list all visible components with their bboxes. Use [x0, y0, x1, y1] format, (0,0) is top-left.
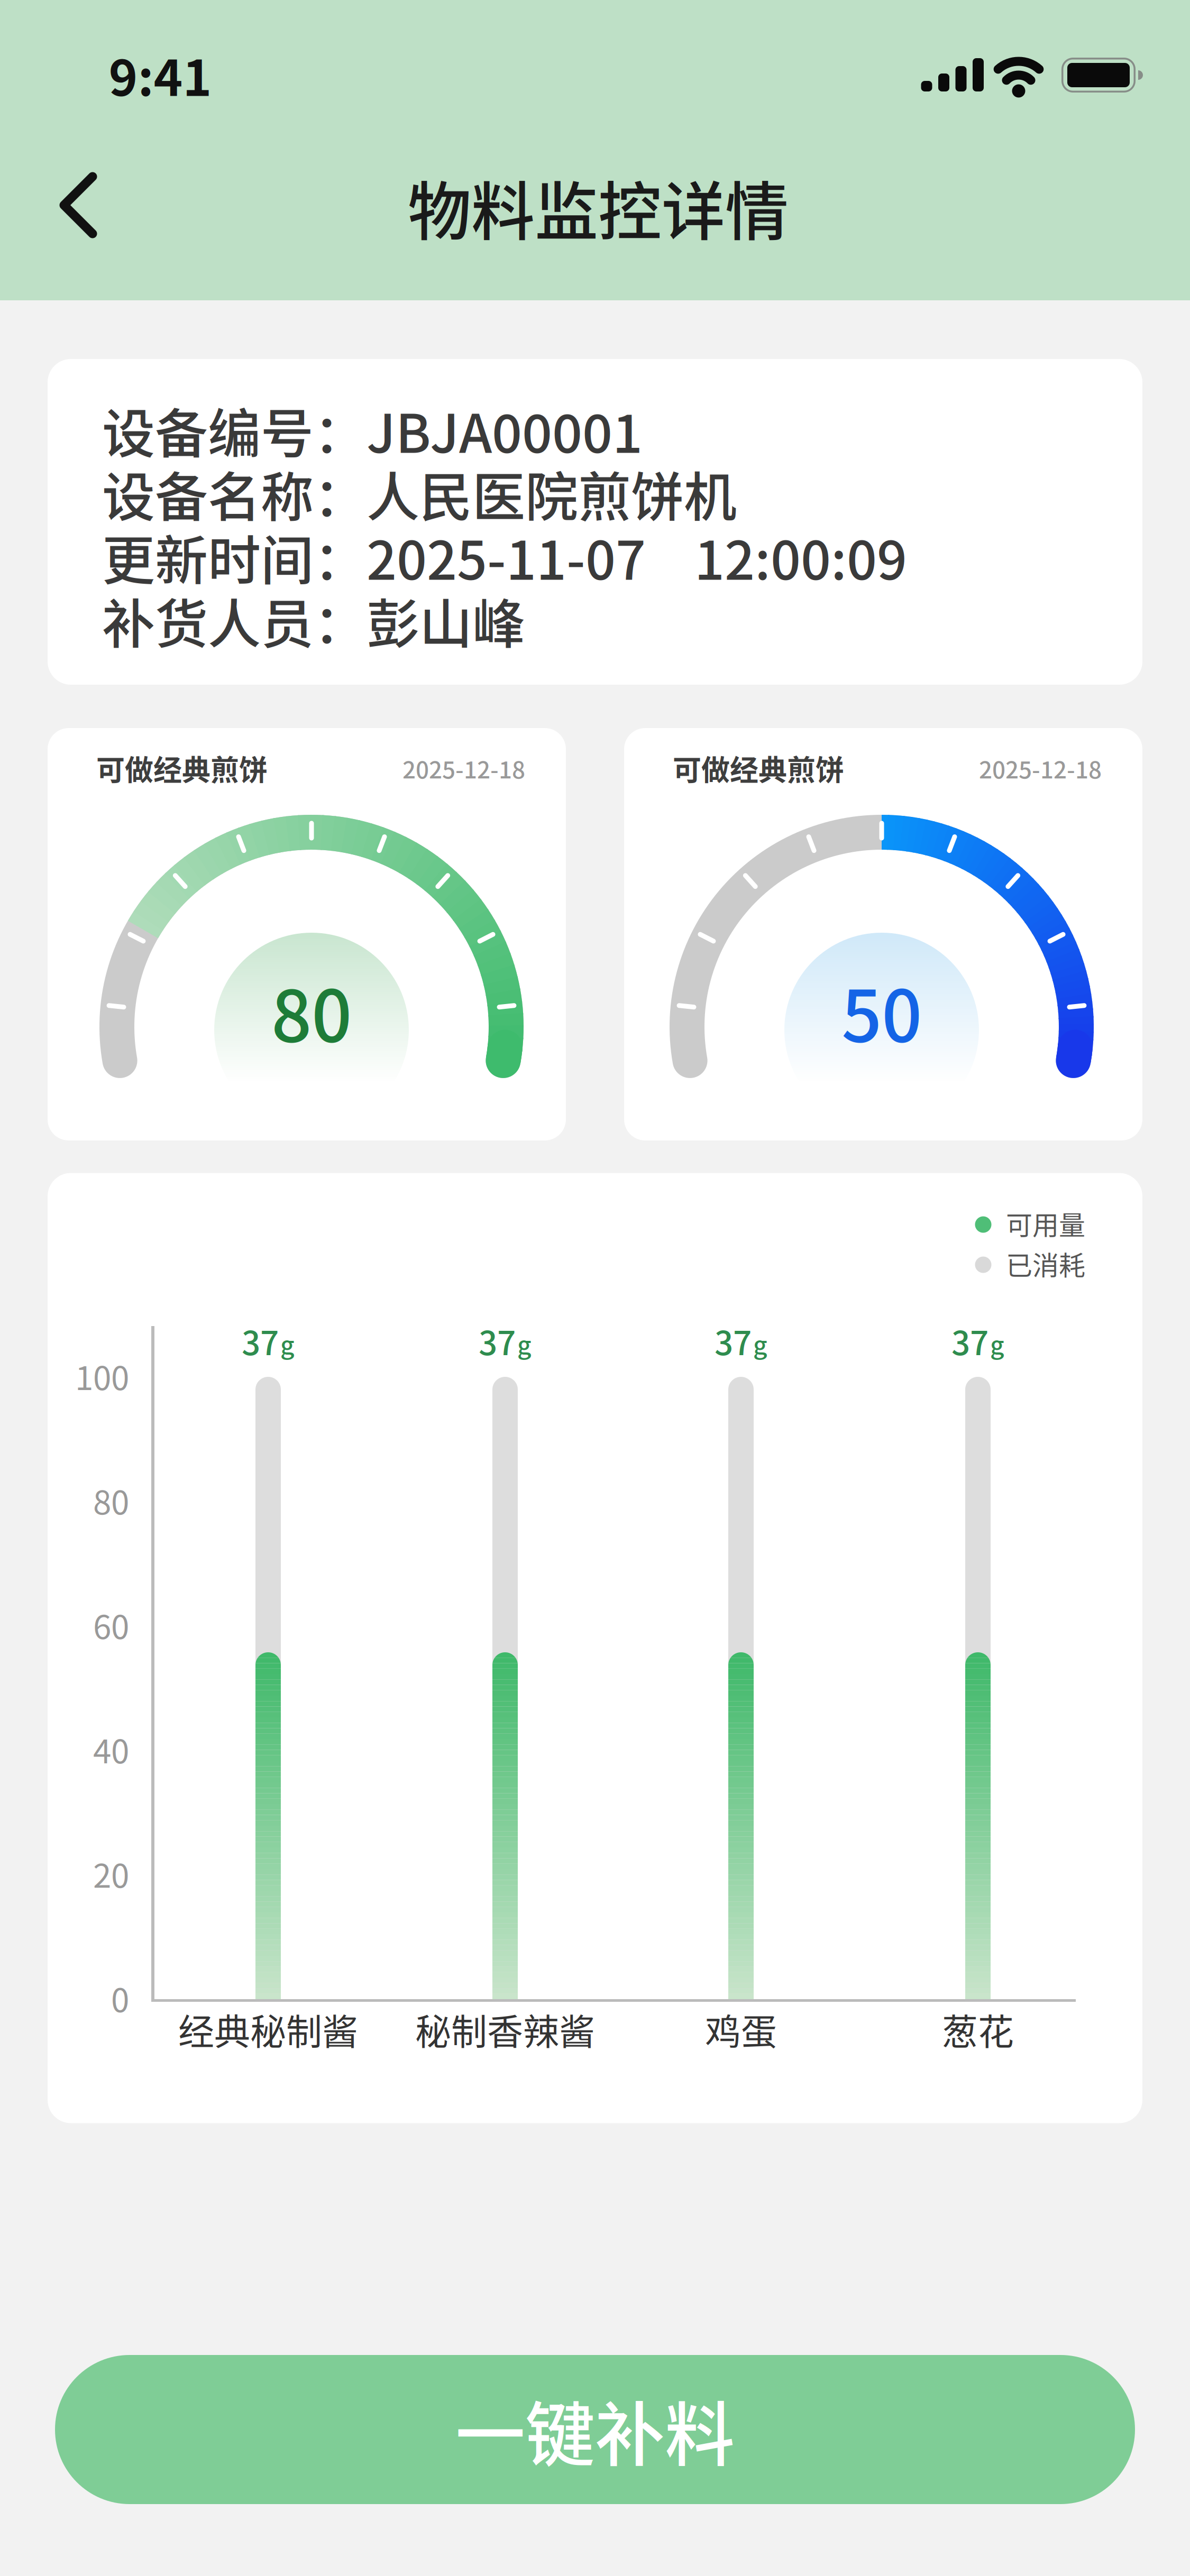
staticText: 9:41: [109, 39, 212, 110]
staticText: 50: [841, 960, 922, 1062]
staticText: 37: [242, 1317, 279, 1365]
staticText: 80: [93, 1476, 129, 1524]
staticText: 葱花: [942, 2003, 1014, 2055]
staticText: g: [990, 1326, 1004, 1361]
staticText: 物料监控详情: [408, 161, 789, 253]
staticText: g: [280, 1326, 295, 1361]
staticText: 37: [715, 1317, 752, 1365]
staticText: 设备编号：JBJA00001: [102, 392, 643, 468]
staticText: 可用量: [1006, 1204, 1085, 1243]
staticText: 0: [111, 1974, 129, 2022]
button[interactable]: Back: [63, 170, 103, 240]
staticText: g: [517, 1326, 532, 1361]
staticText: 37: [479, 1317, 516, 1365]
staticText: 2025-12-18: [402, 751, 525, 785]
staticText: 补货人员：彭山峰: [102, 582, 525, 658]
staticText: 40: [93, 1725, 129, 1773]
staticText: 100: [75, 1352, 129, 1400]
staticText: 鸡蛋: [705, 2003, 777, 2055]
staticText: 一键补料: [455, 2379, 735, 2480]
button[interactable]: 一键补料: [55, 2355, 1135, 2504]
staticText: 秘制香辣酱: [415, 2003, 595, 2055]
staticText: 2025-12-18: [979, 751, 1102, 785]
staticText: 20: [93, 1850, 129, 1897]
staticText: 80: [271, 960, 352, 1062]
staticText: 可做经典煎饼: [673, 748, 844, 789]
staticText: g: [753, 1326, 767, 1361]
staticText: 可做经典煎饼: [96, 748, 268, 789]
staticText: 设备名称：人民医院煎饼机: [102, 455, 737, 532]
staticText: 经典秘制酱: [178, 2003, 358, 2055]
staticText: 37: [951, 1317, 988, 1365]
staticText: 已消耗: [1006, 1245, 1085, 1283]
staticText: 更新时间：2025-11-07 12:00:09: [102, 518, 907, 595]
staticText: 60: [93, 1601, 129, 1648]
